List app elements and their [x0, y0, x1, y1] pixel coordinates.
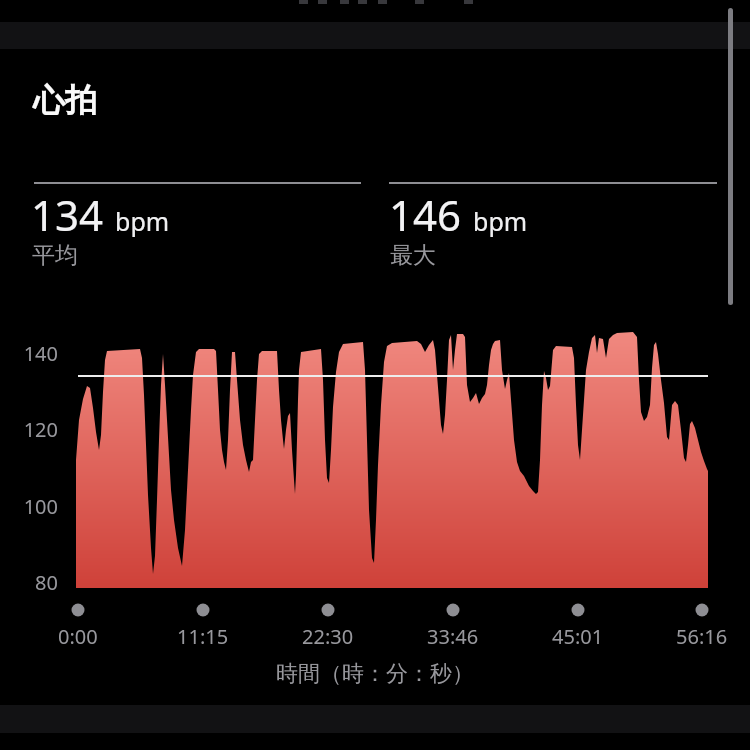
staticText: 心拍 [33, 80, 97, 120]
staticText: 120 [23, 416, 58, 443]
staticText: 45:01 [552, 623, 604, 650]
staticText: bpm [473, 204, 528, 238]
staticText: 11:15 [177, 623, 229, 650]
button[interactable]: 134 [31, 186, 170, 243]
staticText: 時間（時：分：秒） [276, 660, 474, 688]
staticText: 100 [23, 493, 58, 520]
staticText: 平均 [32, 241, 78, 270]
staticText: 140 [23, 340, 58, 367]
staticText: 56:16 [676, 623, 728, 650]
staticText: 146 [389, 186, 462, 243]
staticText: 最大 [390, 241, 436, 270]
staticText: bpm [115, 204, 170, 238]
staticText: 134 [31, 186, 104, 243]
staticText: 0:00 [58, 623, 98, 650]
staticText: 22:30 [302, 623, 354, 650]
staticText: 33:46 [427, 623, 479, 650]
staticText: 80 [35, 569, 58, 596]
button[interactable]: 146 [389, 186, 528, 243]
